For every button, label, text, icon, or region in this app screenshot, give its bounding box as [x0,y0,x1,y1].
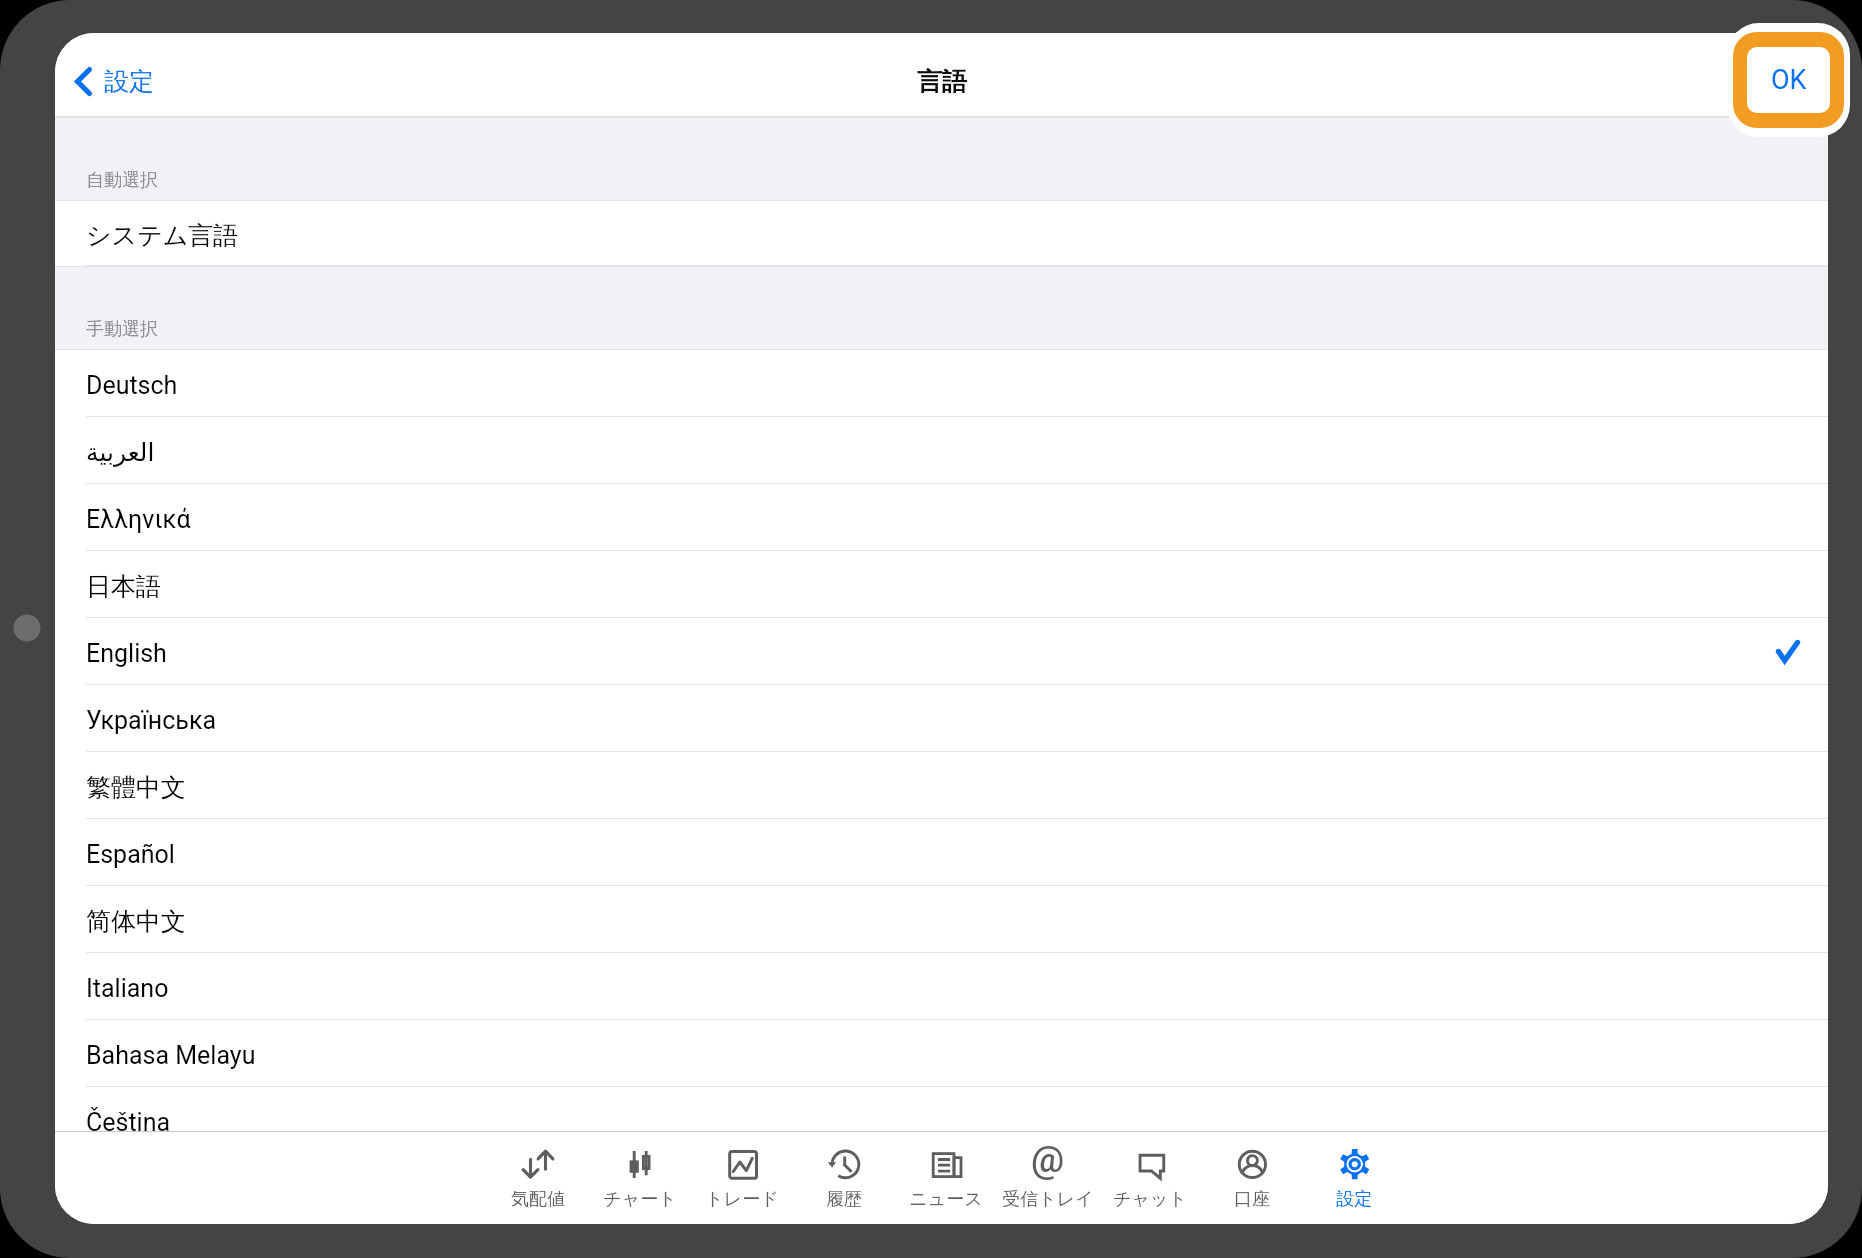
staticText: 口座 [1234,1188,1270,1211]
staticText: 設定 [1336,1188,1372,1211]
button[interactable]: 設定 [1303,1145,1405,1211]
staticText: 言語 [917,66,967,97]
button[interactable]: Back to 設定 [69,56,160,107]
staticText: Español [86,840,175,869]
button[interactable]: チャート [589,1145,691,1211]
button[interactable]: Bahasa Melayu [55,1020,1828,1087]
button[interactable]: 简体中文 [55,886,1828,953]
button[interactable]: トレード [691,1145,793,1211]
button[interactable]: Čeština [55,1087,1828,1131]
button[interactable]: 日本語 [55,551,1828,618]
staticText: 手動選択 [86,318,158,341]
button[interactable]: OK [1733,32,1844,128]
button[interactable]: Deutsch [55,350,1828,417]
staticText: 自動選択 [86,169,158,192]
button[interactable]: @ [997,1145,1099,1211]
staticText: Bahasa Melayu [86,1041,256,1070]
staticText: 繁體中文 [86,772,186,803]
button[interactable]: システム言語 [55,201,1828,266]
staticText: チャート [603,1188,677,1211]
staticText: Čeština [86,1108,171,1131]
staticText: 設定 [104,66,154,97]
button[interactable]: Українська [55,685,1828,752]
staticText: العربية [86,438,155,467]
staticText: Ελληνικά [86,505,191,534]
button[interactable]: 気配値 [487,1145,589,1211]
staticText: 受信トレイ [1002,1188,1094,1211]
button[interactable]: Español [55,819,1828,886]
staticText: 気配値 [511,1188,565,1211]
staticText: 履歴 [826,1188,862,1211]
staticText: 日本語 [86,571,161,602]
staticText: Українська [86,706,217,735]
button[interactable]: English [55,618,1828,685]
staticText: English [86,639,167,668]
button[interactable]: ニュース [895,1145,997,1211]
button[interactable]: チャット [1099,1145,1201,1211]
staticText: ニュース [909,1188,983,1211]
staticText: システム言語 [86,220,239,251]
staticText: Italiano [86,974,169,1003]
staticText: OK [1771,64,1807,96]
button[interactable]: Italiano [55,953,1828,1020]
button[interactable]: 口座 [1201,1145,1303,1211]
button[interactable]: Ελληνικά [55,484,1828,551]
staticText: Deutsch [86,371,178,400]
staticText: 简体中文 [86,906,186,937]
button[interactable]: 履歴 [793,1145,895,1211]
button[interactable]: 繁體中文 [55,752,1828,819]
staticText: トレード [705,1188,779,1211]
staticText: チャット [1113,1188,1187,1211]
staticText: @ [1031,1138,1065,1181]
button[interactable]: العربية [55,417,1828,484]
